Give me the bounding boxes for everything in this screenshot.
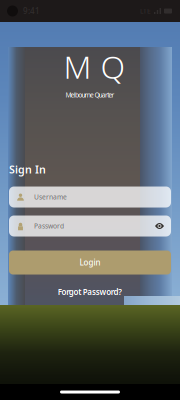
button[interactable]: Forgot Password? <box>9 286 171 297</box>
staticText: LTE <box>140 7 151 15</box>
staticText: Username <box>34 193 67 201</box>
staticText: Login <box>79 257 100 268</box>
staticText: Sign In <box>9 162 46 176</box>
staticText: 9:41 <box>23 6 40 16</box>
staticText: Forgot Password? <box>58 286 122 297</box>
staticText: Password <box>34 222 64 230</box>
staticText: Melbourne Quarter <box>65 90 115 99</box>
button[interactable]: Login <box>9 250 171 274</box>
staticText: MQ <box>63 45 125 87</box>
